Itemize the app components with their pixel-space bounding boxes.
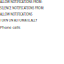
staticText: ALLOW NOTIFICATIONS FROM: (0, 0, 64, 23)
